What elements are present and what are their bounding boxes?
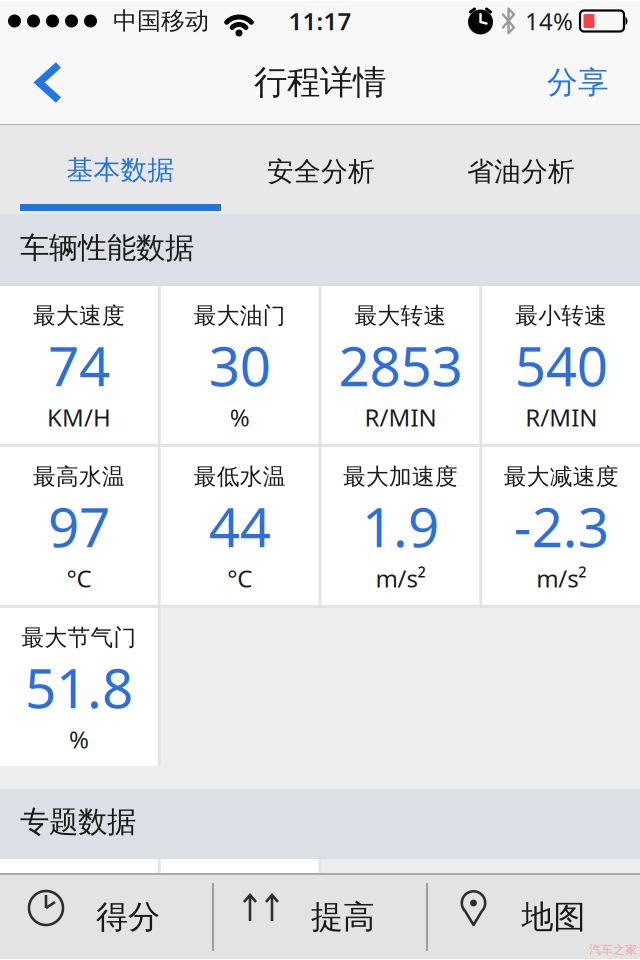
- staticText: 74: [48, 329, 110, 401]
- staticText: 2853: [338, 329, 462, 401]
- staticText: m/s²: [375, 562, 425, 594]
- staticText: 行程详情: [254, 62, 386, 103]
- staticText: 1.9: [362, 490, 439, 562]
- staticText: 中国移动: [113, 6, 209, 36]
- staticText: -2.3: [514, 490, 609, 562]
- staticText: 51.8: [25, 651, 133, 723]
- staticText: 最小转速: [515, 302, 607, 330]
- button[interactable]: 分享: [547, 40, 640, 125]
- button[interactable]: 得分: [0, 875, 212, 959]
- staticText: 安全分析: [267, 155, 375, 188]
- staticText: 11:17: [288, 5, 351, 37]
- staticText: 97: [48, 490, 110, 562]
- staticText: 最大节气门: [21, 624, 136, 652]
- button[interactable]: 安全分析: [221, 125, 421, 214]
- staticText: 地图: [521, 897, 585, 937]
- staticText: KM/H: [47, 401, 111, 433]
- staticText: 最大减速度: [504, 463, 619, 491]
- staticText: 省油分析: [467, 155, 575, 188]
- staticText: %: [230, 401, 250, 433]
- button[interactable]: 省油分析: [421, 125, 621, 214]
- staticText: 最大油门: [194, 302, 286, 330]
- staticText: 最高水温: [33, 463, 125, 491]
- button[interactable]: Back: [0, 41, 62, 123]
- staticText: 14%: [525, 5, 573, 37]
- staticText: 专题数据: [20, 804, 136, 840]
- button[interactable]: 基本数据: [20, 125, 221, 214]
- staticText: 汽车之家: [589, 942, 637, 957]
- button[interactable]: 地图: [428, 875, 640, 959]
- button[interactable]: 提高: [214, 875, 426, 959]
- staticText: 得分: [96, 897, 160, 937]
- staticText: 最大速度: [33, 302, 125, 330]
- staticText: 车辆性能数据: [20, 230, 194, 266]
- staticText: °C: [227, 562, 252, 594]
- staticText: m/s²: [536, 562, 586, 594]
- staticText: R/MIN: [364, 401, 436, 433]
- staticText: °C: [66, 562, 91, 594]
- staticText: 最低水温: [194, 463, 286, 491]
- staticText: 基本数据: [66, 154, 174, 186]
- staticText: %: [69, 723, 89, 755]
- staticText: 分享: [547, 64, 609, 101]
- staticText: 30: [209, 329, 271, 401]
- staticText: 最大转速: [354, 302, 446, 330]
- staticText: 提高: [311, 897, 375, 937]
- staticText: 44: [209, 490, 271, 562]
- staticText: 最大加速度: [343, 463, 458, 491]
- staticText: 540: [515, 329, 608, 401]
- staticText: R/MIN: [525, 401, 597, 433]
